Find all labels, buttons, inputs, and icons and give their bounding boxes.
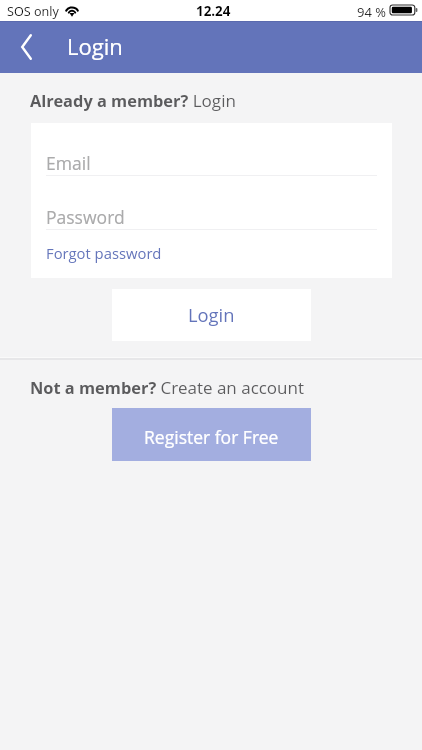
staticText: Forgot password (46, 243, 162, 263)
staticText: 94 % (357, 3, 386, 21)
button[interactable]: Back (5, 21, 47, 73)
staticText: Login (188, 302, 235, 327)
staticText: Login (67, 31, 123, 61)
staticText: Password (46, 205, 125, 229)
button[interactable]: Login (112, 289, 311, 341)
staticText: Already a member? Login (30, 89, 236, 112)
button[interactable]: Forgot password (46, 243, 162, 263)
staticText: Register for Free (144, 425, 279, 449)
staticText: Not a member? Create an account (30, 376, 304, 399)
staticText: Email (46, 151, 91, 175)
button[interactable]: Register for Free (112, 408, 311, 461)
staticText: SOS only (7, 3, 59, 20)
staticText: 12.24 (196, 2, 231, 20)
